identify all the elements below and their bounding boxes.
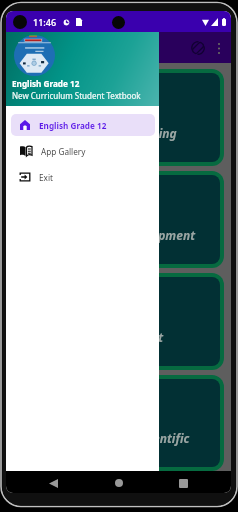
button[interactable]: Home bbox=[110, 474, 128, 492]
staticText: Unit 2: Personal Development bbox=[27, 227, 196, 243]
button[interactable]: Unit 2: Personal Development bbox=[17, 175, 220, 264]
button[interactable]: Screen rotation bbox=[187, 37, 209, 59]
staticText: Unit 3: The Environment bbox=[27, 329, 164, 345]
button[interactable]: App Gallery bbox=[11, 140, 155, 162]
button[interactable]: Recent apps bbox=[174, 474, 192, 492]
staticText: Exit bbox=[39, 172, 53, 183]
staticText: English Grade 12 bbox=[39, 120, 107, 131]
staticText: English Grade 12 bbox=[12, 78, 80, 89]
staticText: App Gallery bbox=[41, 146, 86, 157]
staticText: Unit 4: Science and Scientific bbox=[27, 430, 190, 446]
button[interactable]: English Grade 12 bbox=[11, 114, 155, 136]
button[interactable]: Unit 4: Science and Scientific bbox=[17, 379, 220, 467]
button[interactable]: Unit 1: Language Learning bbox=[17, 73, 220, 162]
button[interactable]: Unit 3: The Environment bbox=[17, 277, 220, 366]
staticText: Unit 1: Language Learning bbox=[27, 125, 177, 141]
button[interactable]: Back bbox=[44, 474, 62, 492]
staticText: New Curriculum Student Textbook bbox=[12, 90, 141, 101]
staticText: 11:46 bbox=[33, 16, 57, 28]
button[interactable]: Exit bbox=[11, 166, 155, 188]
button[interactable]: More options bbox=[209, 38, 229, 58]
